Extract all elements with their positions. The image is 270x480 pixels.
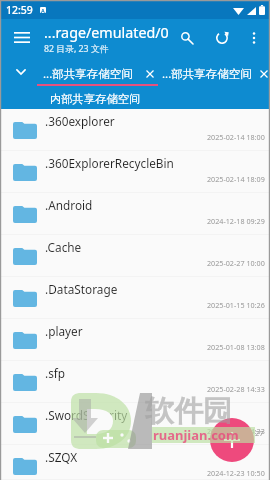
button[interactable]: .SwordSecurity xyxy=(0,403,270,445)
button[interactable]: .360ExplorerRecycleBin xyxy=(0,151,270,193)
staticText: .Cache xyxy=(45,239,82,255)
button[interactable]: .Android xyxy=(0,193,270,235)
button[interactable]: Add xyxy=(210,418,254,462)
staticText: 2025-02-28 14:33 xyxy=(207,426,265,436)
staticText: 2025-02-28 14:33 xyxy=(207,384,265,394)
staticText: 2024-12-18 09:29 xyxy=(207,216,265,226)
staticText: 2025-02-14 18:00 xyxy=(207,132,265,142)
button[interactable]: More options xyxy=(240,24,268,52)
button[interactable]: .SZQX xyxy=(0,445,270,480)
staticText: 2024-12-23 10:50 xyxy=(207,468,265,478)
staticText: .sfp xyxy=(45,365,66,381)
button[interactable]: .360explorer xyxy=(0,109,270,151)
button[interactable]: .sfp xyxy=(0,361,270,403)
button[interactable]: .player xyxy=(0,319,270,361)
staticText: .SwordSecurity xyxy=(45,407,128,423)
staticText: ...部共享存储空间 xyxy=(43,66,133,82)
staticText: 2025-02-14 18:09 xyxy=(207,174,265,184)
button[interactable]: .Cache xyxy=(0,235,270,277)
staticText: 2025-01-08 13:08 xyxy=(207,342,265,352)
button[interactable]: .DataStorage xyxy=(0,277,270,319)
staticText: 2025-02-27 10:00 xyxy=(207,258,265,268)
button[interactable]: Expand path xyxy=(10,60,32,84)
staticText: .Android xyxy=(45,197,93,213)
staticText: 2025-01-15 10:26 xyxy=(207,300,265,310)
staticText: ...部共享存储空间 xyxy=(162,66,252,82)
button[interactable]: ...部共享存储空间 xyxy=(162,64,268,84)
staticText: .player xyxy=(45,323,83,339)
button[interactable]: Navigation menu xyxy=(4,19,40,55)
staticText: .DataStorage xyxy=(45,281,118,297)
staticText: .360ExplorerRecycleBin xyxy=(45,155,174,171)
staticText: 27 xyxy=(255,428,264,438)
staticText: 12:59 xyxy=(6,3,33,17)
staticText: ...rage/emulated/0 xyxy=(44,23,169,42)
staticText: 内部共享存储空间 xyxy=(50,92,141,106)
staticText: A xyxy=(41,7,45,13)
staticText: 软件园 xyxy=(145,393,232,430)
staticText: .360explorer xyxy=(45,113,115,129)
button[interactable]: Refresh xyxy=(208,24,236,52)
staticText: 82 目录, 23 文件 xyxy=(44,43,109,55)
button[interactable]: ...部共享存储空间 xyxy=(37,64,158,84)
staticText: ruanjian.com xyxy=(153,426,239,444)
button[interactable]: Search xyxy=(173,24,201,52)
staticText: .SZQX xyxy=(45,449,78,465)
